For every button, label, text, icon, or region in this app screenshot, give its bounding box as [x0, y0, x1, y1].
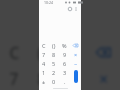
- button[interactable]: +: [70, 68, 81, 77]
- button[interactable]: 8: [49, 50, 59, 59]
- button[interactable]: History: [67, 6, 73, 12]
- staticText: 8: [52, 51, 56, 58]
- staticText: 7: [42, 51, 46, 58]
- staticText: (): [52, 42, 56, 49]
- button[interactable]: [70, 77, 81, 86]
- staticText: 4: [42, 60, 46, 67]
- button[interactable]: 6: [59, 59, 70, 68]
- staticText: 6: [63, 60, 67, 67]
- staticText: 0: [52, 78, 56, 85]
- button[interactable]: %: [57, 37, 88, 65]
- staticText: 7: [10, 68, 21, 87]
- button[interactable]: 9: [57, 65, 88, 90]
- staticText: 3: [63, 69, 67, 76]
- button[interactable]: Equals: [74, 70, 78, 83]
- button[interactable]: ±: [39, 77, 49, 86]
- staticText: %: [62, 42, 67, 49]
- button[interactable]: .: [59, 77, 70, 86]
- button[interactable]: 2: [49, 68, 59, 77]
- staticText: 8: [38, 68, 49, 87]
- staticText: ×: [74, 51, 78, 58]
- button[interactable]: %: [59, 40, 70, 50]
- staticText: 2: [52, 69, 56, 76]
- button[interactable]: 7: [39, 50, 49, 59]
- button[interactable]: [88, 37, 119, 65]
- staticText: %: [66, 43, 80, 62]
- staticText: −: [74, 60, 78, 67]
- staticText: 10:24: [44, 0, 53, 5]
- button[interactable]: [70, 40, 81, 50]
- staticText: 9: [63, 51, 67, 58]
- button[interactable]: C: [1, 37, 29, 65]
- button[interactable]: More options: [73, 6, 79, 12]
- button[interactable]: ×: [88, 65, 119, 90]
- staticText: .: [64, 78, 66, 85]
- staticText: C: [10, 43, 21, 62]
- button[interactable]: 4: [39, 59, 49, 68]
- button[interactable]: ×: [70, 50, 81, 59]
- button[interactable]: (): [29, 37, 57, 65]
- button[interactable]: 3: [59, 68, 70, 77]
- staticText: C: [42, 42, 46, 49]
- button[interactable]: 9: [59, 50, 70, 59]
- staticText: (): [38, 43, 49, 62]
- staticText: ±: [42, 78, 46, 85]
- button[interactable]: 0: [49, 77, 59, 86]
- button[interactable]: 5: [49, 59, 59, 68]
- button[interactable]: 7: [1, 65, 29, 90]
- staticText: +: [74, 69, 78, 76]
- button[interactable]: 8: [29, 65, 57, 90]
- staticText: ×: [99, 68, 110, 87]
- staticText: 5: [52, 60, 56, 67]
- button[interactable]: 1: [39, 68, 49, 77]
- button[interactable]: C: [39, 40, 49, 50]
- button[interactable]: −: [70, 59, 81, 68]
- button[interactable]: (): [49, 40, 59, 50]
- staticText: 9: [68, 68, 80, 87]
- staticText: 1: [42, 69, 46, 76]
